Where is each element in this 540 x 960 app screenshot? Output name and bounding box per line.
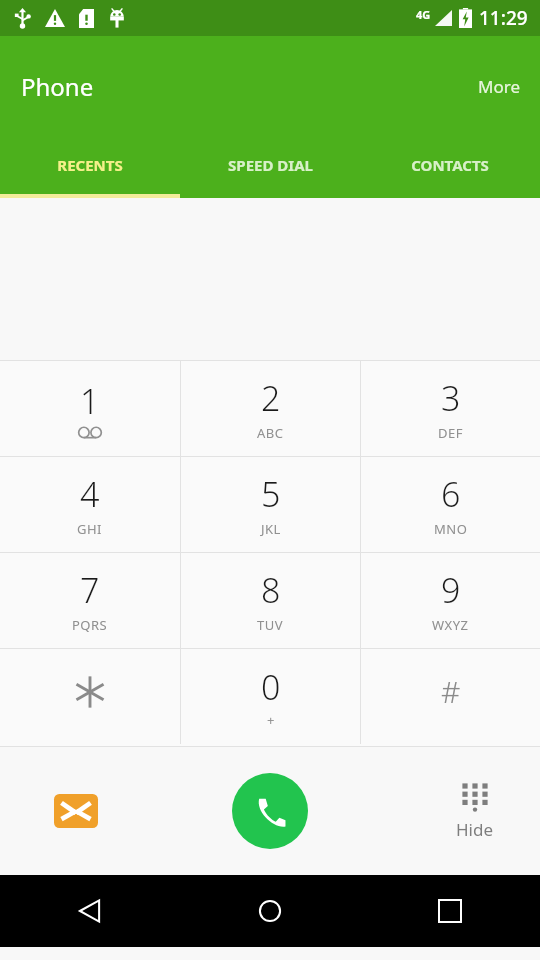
staticText: 4G [416,7,431,22]
button[interactable]: 8 [181,553,360,648]
staticText: SPEED DIAL [228,155,313,175]
button[interactable]: More [458,61,540,112]
button[interactable]: 4 [0,457,180,552]
staticText: 0 [261,664,281,710]
staticText: 4 [80,471,100,517]
button[interactable]: 7 [0,553,180,648]
staticText: ABC [257,424,284,442]
button[interactable]: Back [0,875,180,947]
button[interactable]: CONTACTS [360,136,540,194]
staticText: CONTACTS [411,155,489,175]
button[interactable]: 1 [0,361,180,456]
staticText: 9 [441,567,461,613]
button[interactable]: 5 [181,457,360,552]
staticText: 7 [80,567,100,613]
button[interactable]: 2 [181,361,360,456]
button[interactable]: 0 [181,649,360,744]
staticText: JKL [261,520,281,538]
staticText: TUV [257,616,284,634]
staticText: WXYZ [432,616,469,634]
button[interactable]: # [361,649,540,744]
button[interactable]: RECENTS [0,136,180,194]
staticText: Phone [21,70,94,103]
staticText: More [478,75,520,98]
staticText: DEF [438,424,463,442]
staticText: + [267,711,275,729]
button[interactable]: Hide [448,777,502,845]
button[interactable]: SPEED DIAL [180,136,360,194]
button[interactable]: Home [180,875,360,947]
staticText: GHI [77,520,103,538]
staticText: 1 [80,378,100,424]
staticText: PQRS [72,616,108,634]
button[interactable]: 3 [361,361,540,456]
button[interactable]: Recent apps [360,875,540,947]
staticText: MNO [434,520,468,538]
staticText: # [441,671,461,712]
staticText: 11:29 [479,5,528,31]
button[interactable] [0,649,180,744]
button[interactable]: 9 [361,553,540,648]
staticText: 3 [441,375,461,421]
staticText: RECENTS [57,155,123,175]
button[interactable]: Message [52,787,100,835]
staticText: Hide [456,818,494,841]
button[interactable]: Call [232,773,308,849]
button[interactable]: 6 [361,457,540,552]
staticText: 8 [261,567,281,613]
staticText: 5 [261,471,281,517]
staticText: 6 [441,471,461,517]
staticText: 2 [261,375,281,421]
